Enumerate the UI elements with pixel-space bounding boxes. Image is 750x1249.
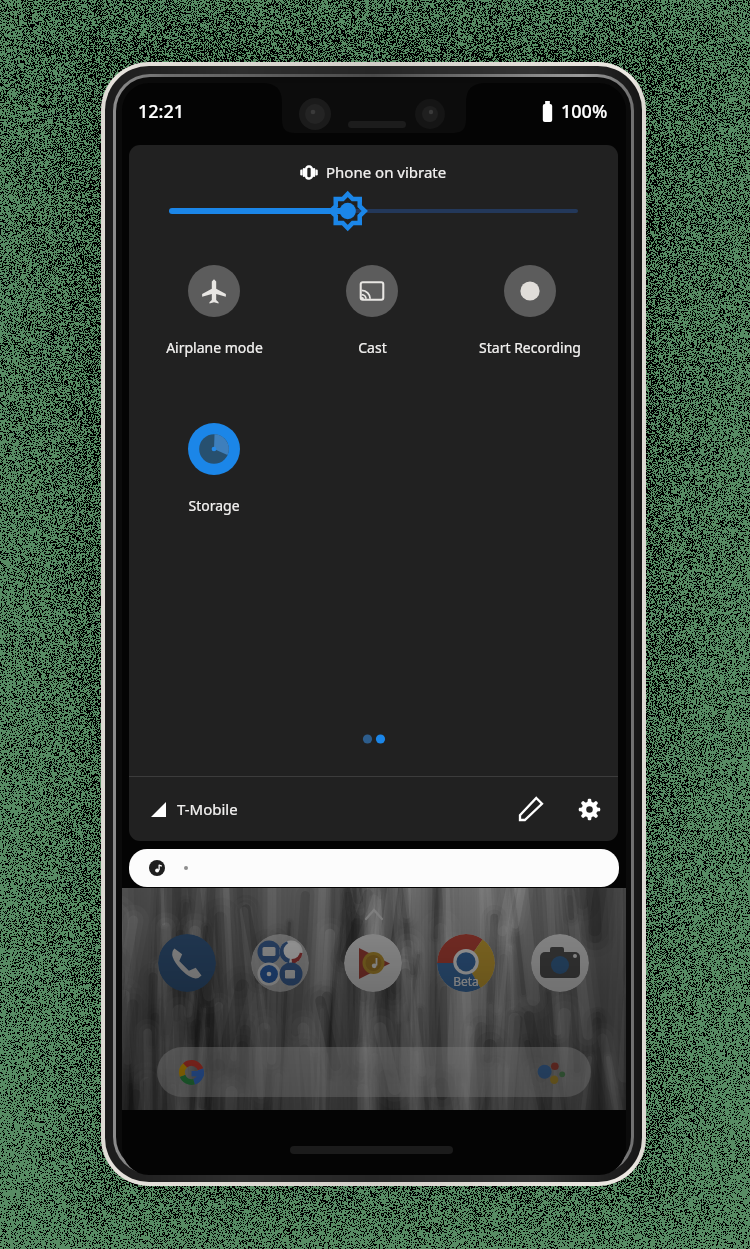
button[interactable] (129, 849, 619, 887)
staticText: T-Mobile (177, 799, 238, 819)
staticText: Cast (358, 338, 387, 357)
button[interactable]: Brightness (172, 193, 576, 229)
button[interactable]: Edit (511, 789, 551, 829)
button[interactable]: Camera (531, 934, 589, 992)
button[interactable]: Search (157, 1047, 591, 1097)
button[interactable]: Start Recording (468, 265, 592, 361)
staticText: Storage (188, 496, 240, 515)
button[interactable]: Google folder (251, 934, 309, 992)
button[interactable]: Play Store (344, 934, 402, 992)
other: Battery full (541, 101, 554, 122)
button[interactable]: T-Mobile (151, 799, 238, 819)
other: Page 2 of 2 (359, 733, 389, 745)
staticText: 100% (561, 99, 608, 124)
button[interactable]: Chrome Beta (437, 934, 495, 992)
button[interactable]: Airplane mode (152, 265, 276, 361)
button[interactable]: Cast (310, 265, 434, 361)
button[interactable]: Phone on vibrate (129, 162, 618, 182)
button[interactable]: Settings (569, 789, 609, 829)
staticText: Beta (447, 973, 485, 989)
button[interactable]: Phone (158, 934, 216, 992)
button[interactable]: Storage (152, 423, 276, 519)
staticText: Airplane mode (166, 338, 263, 357)
staticText: 12:21 (138, 99, 185, 124)
staticText: Start Recording (479, 338, 581, 357)
staticText: Phone on vibrate (326, 162, 447, 182)
